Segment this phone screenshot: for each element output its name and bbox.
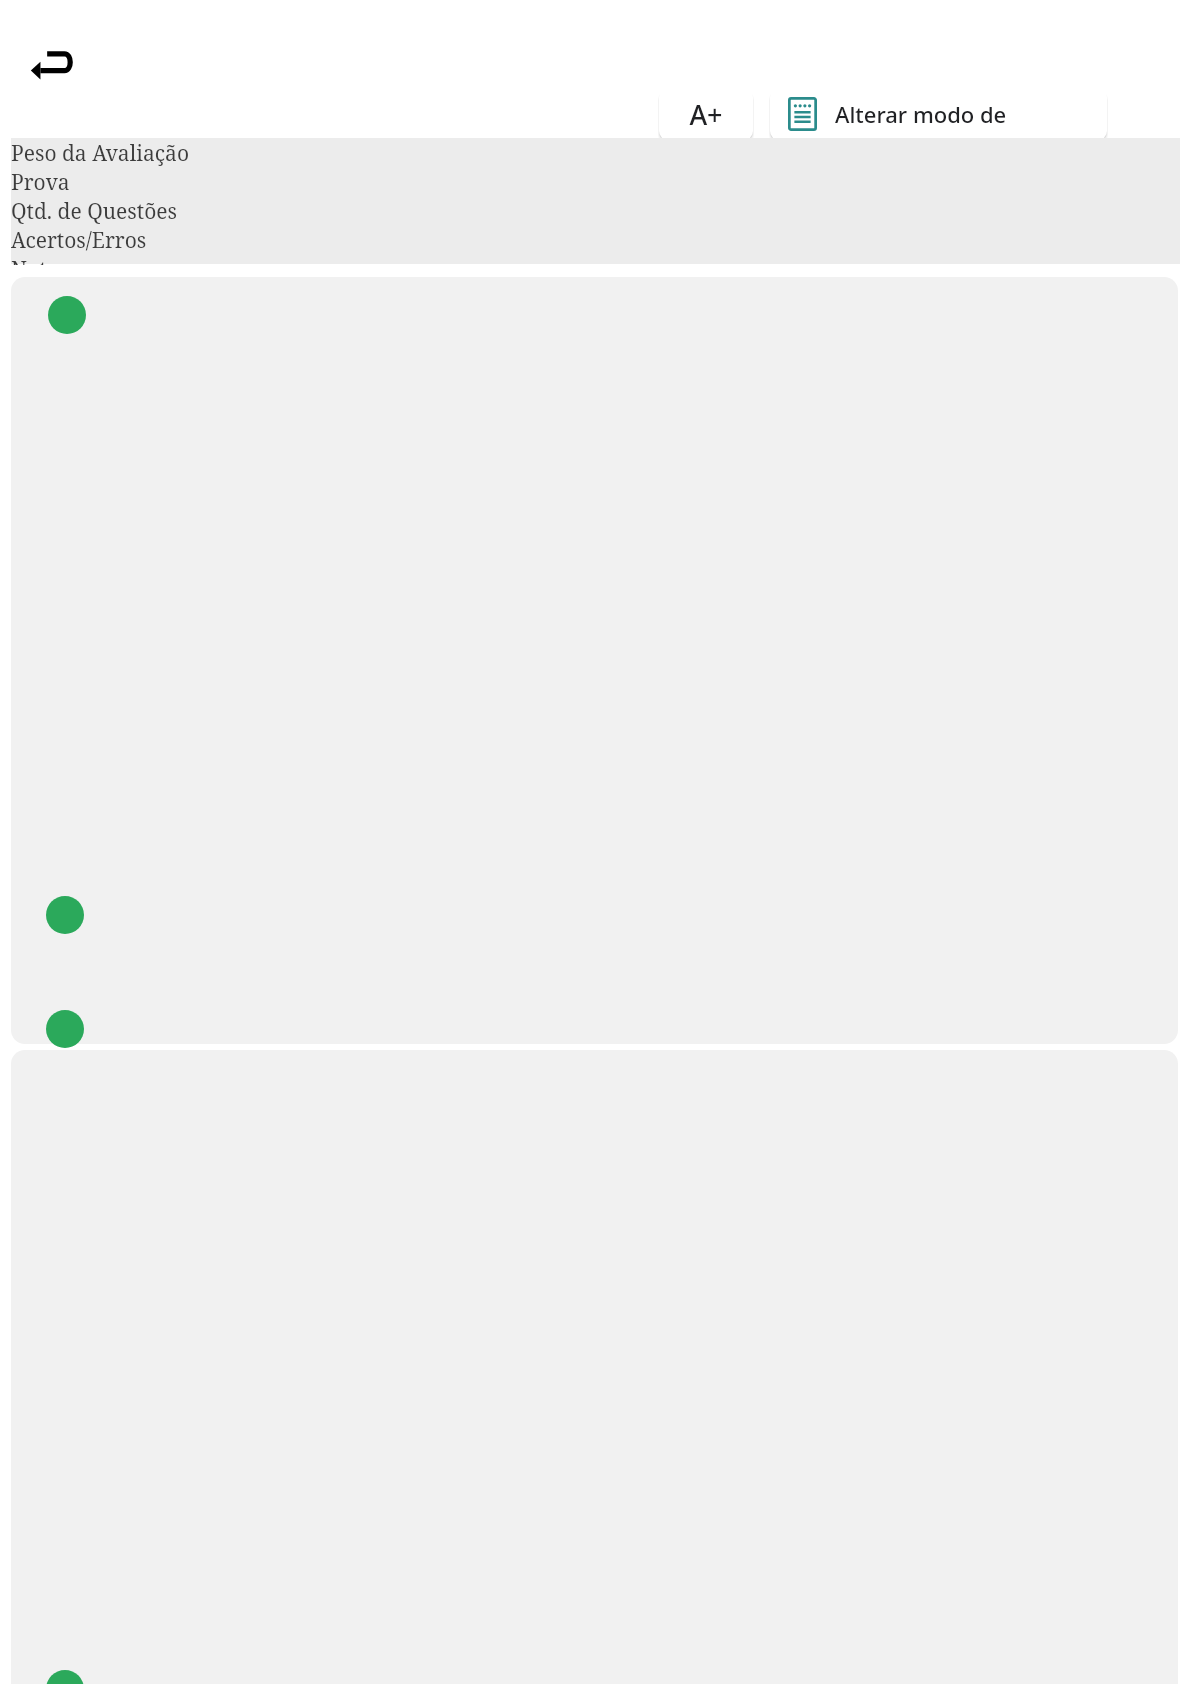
button[interactable]: Status [48,296,86,334]
staticText: Alterar modo de visualização [835,99,1093,129]
staticText: Peso da Avaliação [11,139,189,168]
button[interactable] [11,1050,1178,1684]
button[interactable]: A+ [659,88,753,140]
staticText: A+ [689,96,723,133]
button[interactable] [11,277,1178,1044]
staticText: Nota [11,255,59,265]
staticText: Qtd. de Questões [11,197,178,226]
button[interactable]: Voltar [18,33,84,93]
button[interactable]: Alterar modo de visualização [770,88,1107,140]
button[interactable]: Status [46,1670,84,1684]
button[interactable]: Status [46,896,84,934]
button[interactable]: Status [46,1010,84,1048]
staticText: Prova [11,168,70,197]
staticText: Acertos/Erros [11,226,147,255]
